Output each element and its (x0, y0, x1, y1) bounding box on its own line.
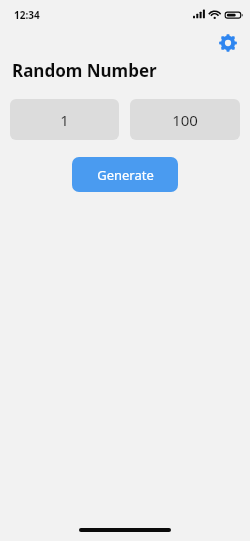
button[interactable]: 1 (10, 99, 119, 140)
staticText: 100 (172, 110, 198, 130)
button[interactable]: Generate (72, 157, 178, 192)
button[interactable]: 100 (130, 99, 240, 140)
button[interactable]: Settings (216, 31, 240, 55)
staticText: 12:34 (14, 8, 40, 22)
staticText: 1 (60, 110, 69, 130)
staticText: Generate (97, 166, 154, 184)
staticText: Random Number (12, 59, 157, 82)
